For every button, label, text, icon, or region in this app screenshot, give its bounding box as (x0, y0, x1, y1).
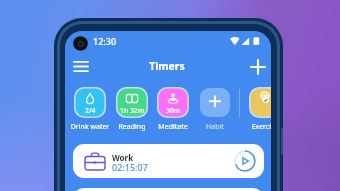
button[interactable]: Exercise (249, 87, 271, 118)
button[interactable]: Start timer (234, 150, 256, 172)
button[interactable]: Drink water (74, 87, 106, 118)
button[interactable]: Habit (199, 87, 231, 118)
staticText: 30m (166, 106, 181, 115)
staticText: 02:15:07 (112, 161, 148, 173)
staticText: Work (112, 152, 134, 163)
staticText: 1h 32m (120, 106, 145, 115)
button[interactable]: Meditate (157, 87, 189, 118)
staticText: Reading (104, 122, 160, 132)
button[interactable]: Work (73, 144, 264, 178)
button[interactable]: Study (73, 188, 264, 191)
staticText: Timers (65, 59, 270, 73)
staticText: Meditate (145, 122, 201, 132)
button[interactable]: Menu (69, 56, 93, 77)
staticText: Exercise (237, 122, 271, 132)
button[interactable]: Reading (116, 87, 148, 118)
staticText: Habit (187, 122, 243, 132)
button[interactable]: Add timer (246, 56, 270, 78)
staticText: 12:30 (93, 35, 117, 47)
staticText: 2/4 (85, 106, 96, 115)
staticText: Drink water (65, 122, 118, 132)
